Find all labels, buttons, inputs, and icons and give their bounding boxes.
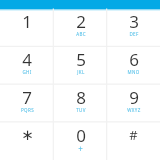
staticText: ABC	[76, 31, 86, 37]
staticText: 3	[129, 10, 139, 33]
staticText: JKL	[77, 69, 85, 75]
staticText: 2	[76, 10, 86, 33]
button[interactable]: 2 ABC	[54, 9, 107, 47]
button[interactable]: 4 GHI	[0, 47, 54, 85]
staticText: PQRS	[21, 107, 34, 113]
button[interactable]: 1	[0, 9, 54, 47]
button[interactable]: star	[0, 123, 54, 160]
staticText: 9	[129, 86, 139, 109]
staticText: 8	[76, 86, 86, 109]
button[interactable]: 8 TUV	[54, 85, 107, 123]
button[interactable]: 5 JKL	[54, 47, 107, 85]
staticText: GHI	[22, 69, 32, 75]
staticText: 1	[22, 10, 32, 33]
staticText: 0	[76, 124, 86, 147]
staticText: 7	[22, 86, 32, 109]
staticText: ∗	[21, 126, 34, 143]
button[interactable]: 6 MNO	[107, 47, 160, 85]
staticText: 4	[22, 48, 32, 71]
staticText: +	[78, 143, 83, 154]
button[interactable]: 7 PQRS	[0, 85, 54, 123]
button[interactable]: pound	[107, 123, 160, 160]
staticText: MNO	[127, 69, 140, 75]
staticText: TUV	[76, 107, 86, 113]
staticText: #	[129, 126, 138, 144]
staticText: WXYZ	[127, 107, 141, 113]
button[interactable]: 9 WXYZ	[107, 85, 160, 123]
button[interactable]: 0 +	[54, 123, 107, 160]
staticText: 6	[129, 48, 139, 71]
staticText: 5	[76, 48, 86, 71]
button[interactable]: 3 DEF	[107, 9, 160, 47]
staticText: DEF	[129, 31, 139, 37]
